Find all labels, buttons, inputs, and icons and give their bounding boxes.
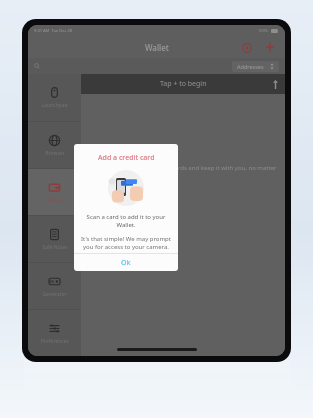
staticText: Wallet bbox=[47, 197, 62, 204]
button[interactable]: Ok bbox=[74, 254, 178, 271]
button[interactable]: Wallet bbox=[28, 169, 81, 215]
staticText: Tap + to begin bbox=[160, 79, 207, 89]
staticText: Add a credit card bbox=[98, 153, 155, 163]
staticText: It's that simple! We may prompt you for … bbox=[79, 235, 173, 251]
staticText: Browser bbox=[45, 150, 65, 157]
staticText: Launchpad bbox=[41, 102, 68, 109]
button[interactable]: Addresses bbox=[232, 61, 279, 72]
button[interactable]: Launchpad bbox=[28, 74, 81, 121]
button[interactable]: Generator bbox=[28, 263, 81, 309]
staticText: Wallet bbox=[145, 42, 169, 53]
staticText: Preferences bbox=[41, 338, 69, 345]
staticText: Generator bbox=[42, 291, 67, 298]
staticText: Scan a card to add it to your Wallet. bbox=[79, 213, 173, 229]
button[interactable]: Preferences bbox=[28, 310, 81, 356]
staticText: Addresses bbox=[237, 63, 264, 70]
staticText: 9:41 AM Tue Dec 28 bbox=[34, 28, 73, 33]
button[interactable]: Safe Notes bbox=[28, 216, 81, 262]
staticText: Safe Notes bbox=[42, 244, 68, 251]
button[interactable]: Browser bbox=[28, 122, 81, 168]
button[interactable]: Add bbox=[263, 40, 277, 54]
staticText: Securely store your payment cards and ke… bbox=[85, 164, 281, 172]
button[interactable]: Lock bbox=[240, 41, 253, 54]
staticText: 100% bbox=[258, 28, 269, 33]
staticText: Ok bbox=[121, 258, 131, 268]
button[interactable]: Tap + to begin bbox=[81, 74, 285, 94]
